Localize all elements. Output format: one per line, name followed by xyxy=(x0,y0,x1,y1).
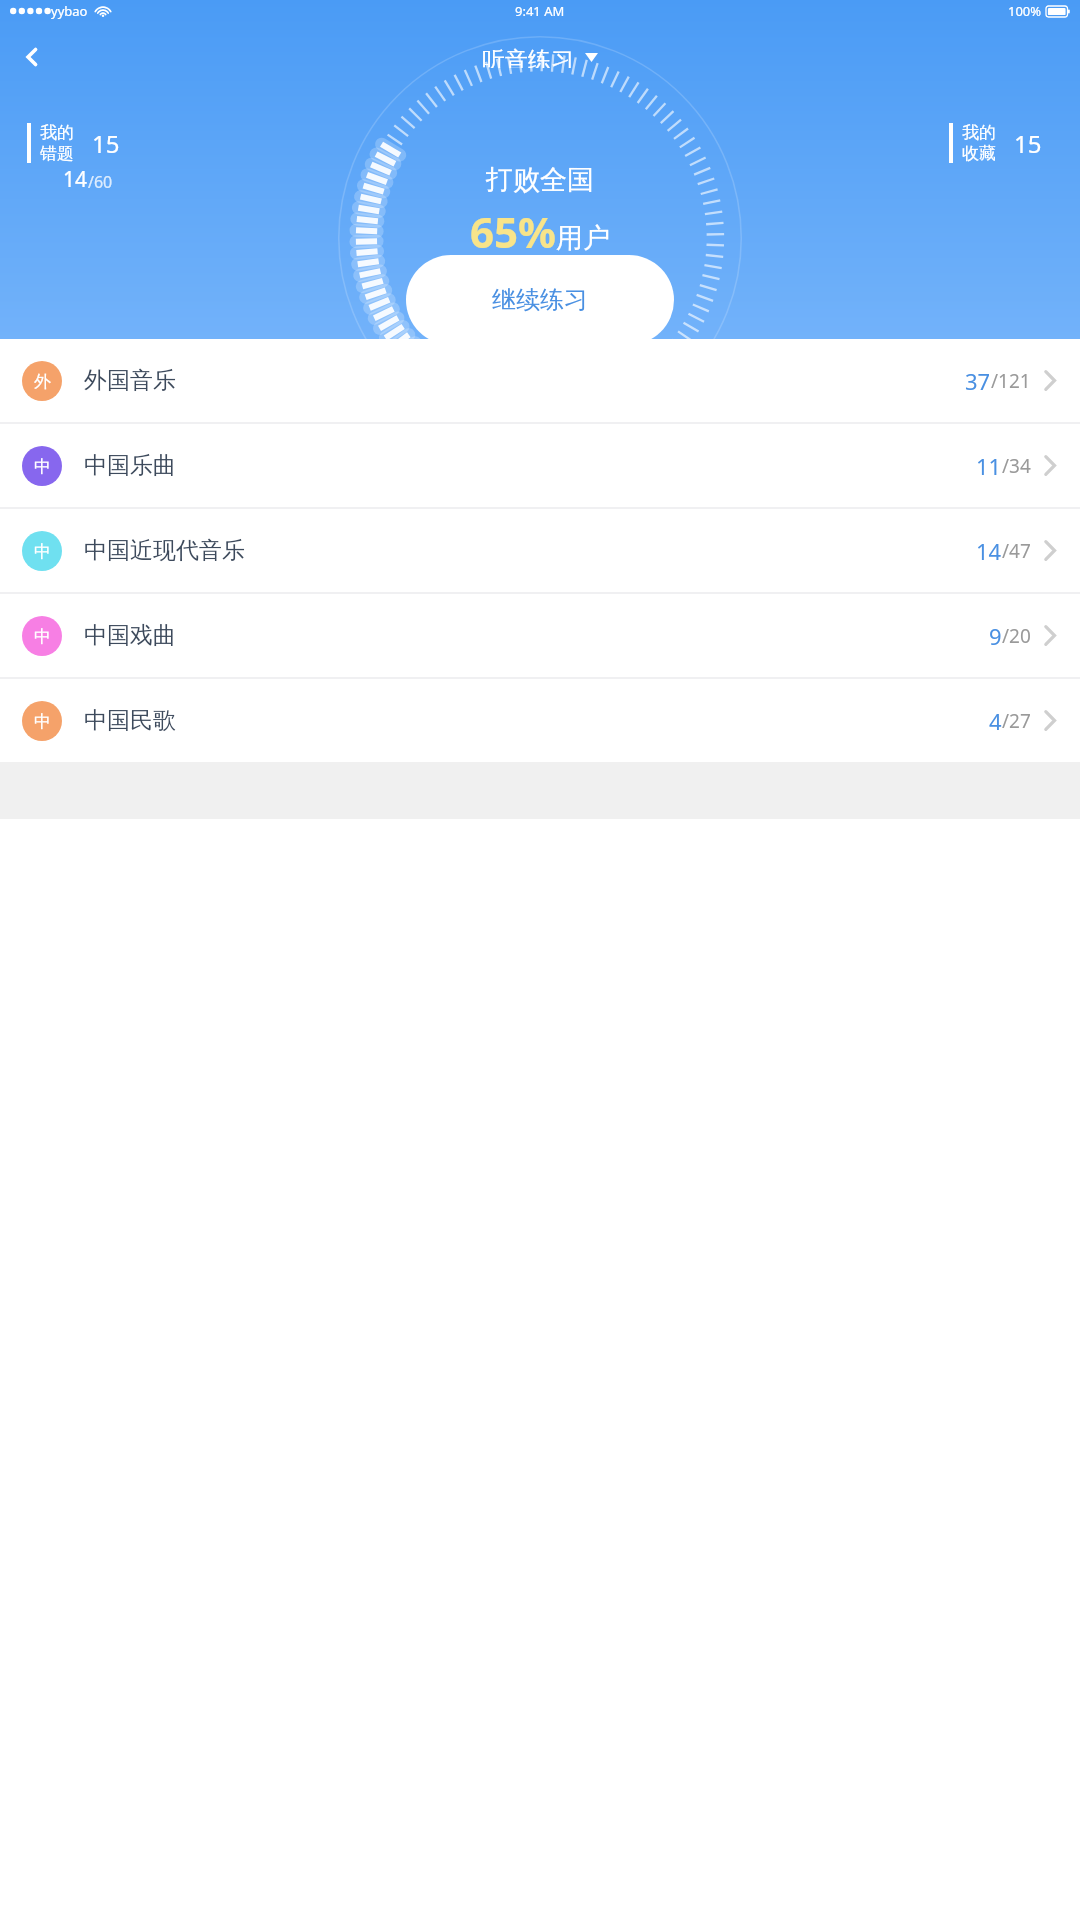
staticText: 37 xyxy=(965,366,991,396)
staticText: 打败全国 xyxy=(486,163,594,197)
staticText: 错题 xyxy=(40,143,74,164)
staticText: 中 xyxy=(34,541,51,562)
staticText: 外 xyxy=(34,371,51,392)
staticText: yybao xyxy=(51,2,88,20)
staticText: /121 xyxy=(991,368,1031,394)
staticText: 我的 xyxy=(40,122,74,143)
staticText: 15 xyxy=(92,127,120,160)
staticText: /47 xyxy=(1002,538,1031,564)
staticText: 11 xyxy=(976,451,1002,481)
staticText: /20 xyxy=(1002,623,1031,649)
staticText: 继续练习 xyxy=(492,285,588,315)
button[interactable]: 中 xyxy=(0,679,1080,762)
staticText: 9 xyxy=(989,621,1002,651)
button[interactable]: 中 xyxy=(0,509,1080,592)
button[interactable]: 外 xyxy=(0,339,1080,422)
staticText: 9:41 AM xyxy=(515,2,565,20)
staticText: 14 xyxy=(976,536,1002,566)
staticText: 14 xyxy=(63,165,88,194)
button[interactable]: 我的 xyxy=(27,122,120,164)
staticText: 65% xyxy=(470,203,556,260)
staticText: 中国乐曲 xyxy=(84,451,176,480)
staticText: 中 xyxy=(34,456,51,477)
button[interactable]: 我的 xyxy=(949,122,1042,164)
button[interactable]: 继续练习 xyxy=(406,255,674,345)
staticText: /27 xyxy=(1002,708,1031,734)
staticText: 用户 xyxy=(556,221,610,255)
staticText: 外国音乐 xyxy=(84,366,176,395)
staticText: /34 xyxy=(1002,453,1031,479)
staticText: /60 xyxy=(88,171,113,193)
staticText: 中 xyxy=(34,626,51,647)
staticText: 收藏 xyxy=(962,143,996,164)
button[interactable]: Back xyxy=(8,46,56,68)
button[interactable]: 中 xyxy=(0,594,1080,677)
staticText: 听音练习 xyxy=(482,46,574,68)
staticText: 中 xyxy=(34,711,51,732)
staticText: 中国戏曲 xyxy=(84,621,176,650)
button[interactable]: 听音练习 xyxy=(482,46,598,68)
staticText: 中国民歌 xyxy=(84,706,176,735)
staticText: 我的 xyxy=(962,122,996,143)
button[interactable]: 中 xyxy=(0,424,1080,507)
staticText: 100% xyxy=(1008,2,1042,20)
staticText: 15 xyxy=(1014,127,1042,160)
staticText: 4 xyxy=(989,706,1002,736)
staticText: 中国近现代音乐 xyxy=(84,536,245,565)
